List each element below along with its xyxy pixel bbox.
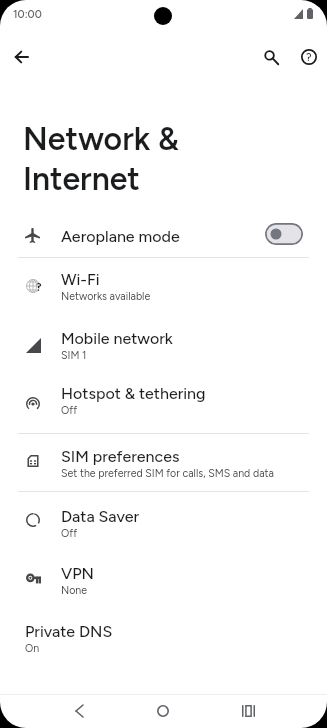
button[interactable]: VPN <box>0 552 327 610</box>
button[interactable]: Private DNS <box>0 610 327 668</box>
staticText: None <box>61 584 88 596</box>
staticText: Off <box>61 404 78 416</box>
button[interactable]: Wi-Fi <box>0 258 327 316</box>
staticText: Data Saver <box>61 507 140 526</box>
staticText: Network & Internet <box>23 118 179 198</box>
staticText: Set the preferred SIM for calls, SMS and… <box>61 467 274 479</box>
staticText: Wi-Fi <box>61 270 100 289</box>
staticText: Mobile network <box>61 329 173 348</box>
button[interactable]: Mobile network <box>0 316 327 374</box>
button[interactable]: Hotspot & tethering <box>0 372 327 430</box>
button[interactable]: Help <box>289 37 327 77</box>
button[interactable]: Aeroplane mode toggle <box>265 223 303 245</box>
staticText: Private DNS <box>25 622 113 641</box>
button[interactable]: Back <box>1 37 41 77</box>
staticText: Off <box>61 527 78 539</box>
button[interactable]: Search <box>251 37 291 77</box>
staticText: Aeroplane mode <box>61 227 180 246</box>
staticText: On <box>25 642 40 654</box>
staticText: VPN <box>61 564 94 583</box>
staticText: SIM preferences <box>61 447 180 466</box>
button[interactable]: Aeroplane mode <box>0 214 327 258</box>
button[interactable]: Recents <box>231 694 265 728</box>
staticText: ? <box>306 51 312 64</box>
button[interactable]: Data Saver <box>0 495 327 553</box>
button[interactable]: Back <box>62 694 96 728</box>
button[interactable]: SIM preferences <box>0 435 327 491</box>
staticText: SIM 1 <box>61 349 87 361</box>
staticText: 10:00 <box>13 8 42 21</box>
staticText: Networks available <box>61 290 151 302</box>
button[interactable]: Home <box>146 694 180 728</box>
staticText: Hotspot & tethering <box>61 384 206 403</box>
staticText: ? <box>36 281 42 294</box>
